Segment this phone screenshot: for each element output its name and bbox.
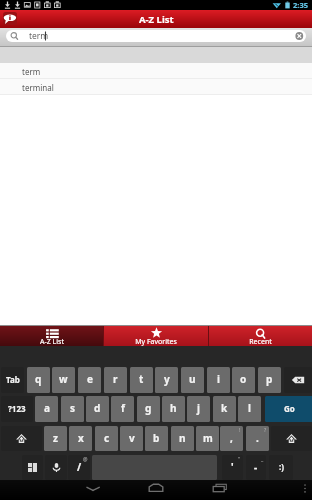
button[interactable]: Voice input [45,455,67,480]
staticText: A-Z List [40,337,64,347]
staticText: Go [284,403,295,414]
button[interactable]: Home [141,480,171,500]
button[interactable]: l [238,396,261,422]
staticText: , [230,431,233,445]
staticText: j [197,401,200,415]
staticText: term [29,30,49,42]
staticText: y [164,372,170,386]
staticText: My Favorites [135,337,177,347]
staticText: - [254,460,258,474]
staticText: ?123 [8,403,26,414]
staticText: l [248,401,251,415]
staticText: q [35,372,42,386]
button[interactable]: My Favorites [104,326,208,346]
button[interactable]: m [196,426,219,451]
button[interactable]: o [232,367,255,393]
button[interactable]: e [78,367,101,393]
staticText: ' [231,460,234,474]
staticText: Tab [6,374,20,385]
button[interactable]: u [181,367,204,393]
staticText: . [256,431,259,445]
button[interactable]: Home [3,12,17,25]
button[interactable]: w [52,367,75,393]
staticText: a [44,401,50,415]
staticText: z [53,431,58,445]
staticText: r [113,372,118,386]
staticText: " [238,456,241,463]
staticText: 2:35 [293,0,308,10]
staticText: k [221,401,228,415]
button[interactable]: Recent apps [205,480,235,500]
button[interactable]: Back [78,480,108,500]
staticText: A-Z List [139,13,174,26]
button[interactable]: p [258,367,281,393]
button[interactable]: a [35,396,58,422]
staticText: terminal [22,82,54,93]
button[interactable]: z [44,426,67,451]
button[interactable]: r [104,367,127,393]
button[interactable]: f [111,396,134,422]
staticText: ? [264,427,267,434]
button[interactable]: - [246,455,266,480]
staticText: h [170,401,177,415]
button[interactable]: Language [22,455,43,480]
button[interactable]: h [162,396,185,422]
button[interactable]: A-Z List [0,326,103,346]
button[interactable]: c [95,426,118,451]
staticText: ! [239,427,241,434]
staticText: d [94,401,101,415]
button[interactable]: s [61,396,84,422]
button[interactable]: y [155,367,178,393]
staticText: _ [261,456,264,463]
staticText: n [179,431,186,445]
button[interactable]: d [86,396,109,422]
staticText: c [104,431,110,445]
staticText: i [217,372,220,386]
button[interactable]: term [0,63,312,79]
button[interactable]: b [145,426,168,451]
button[interactable]: i [207,367,230,393]
staticText: b [153,431,160,445]
button[interactable]: , [220,426,243,451]
staticText: :) [279,461,284,472]
button[interactable]: ?123 [1,396,33,422]
button[interactable]: / [68,455,90,480]
button[interactable]: v [120,426,143,451]
button[interactable]: Go [265,396,312,422]
staticText: f [121,401,125,415]
button[interactable]: term [6,30,306,42]
button[interactable]: Shift [271,426,312,451]
button[interactable]: More options [296,480,312,500]
button[interactable]: Backspace [284,367,312,393]
button[interactable]: k [213,396,236,422]
staticText: u [189,372,196,386]
staticText: p [266,372,273,386]
button[interactable]: n [171,426,194,451]
button[interactable]: j [187,396,210,422]
staticText: Recent [249,337,272,347]
button[interactable]: Shift [1,426,42,451]
staticText: g [145,401,152,415]
staticText: @ [83,456,88,463]
staticText: / [77,460,82,474]
staticText: term [22,66,41,77]
button[interactable]: q [27,367,50,393]
staticText: o [240,372,247,386]
button[interactable]: ' [222,455,243,480]
button[interactable]: g [137,396,160,422]
button[interactable]: :) [269,455,293,480]
staticText: e [87,372,93,386]
button[interactable]: x [69,426,92,451]
button[interactable]: t [130,367,153,393]
staticText: v [129,431,135,445]
button[interactable]: terminal [0,79,312,95]
button[interactable]: . [246,426,269,451]
staticText: t [139,372,144,386]
button[interactable]: Tab [1,367,24,393]
staticText: x [78,431,84,445]
button[interactable]: Recent [209,326,312,346]
staticText: m [203,431,213,445]
staticText: s [70,401,76,415]
staticText: w [59,372,68,386]
